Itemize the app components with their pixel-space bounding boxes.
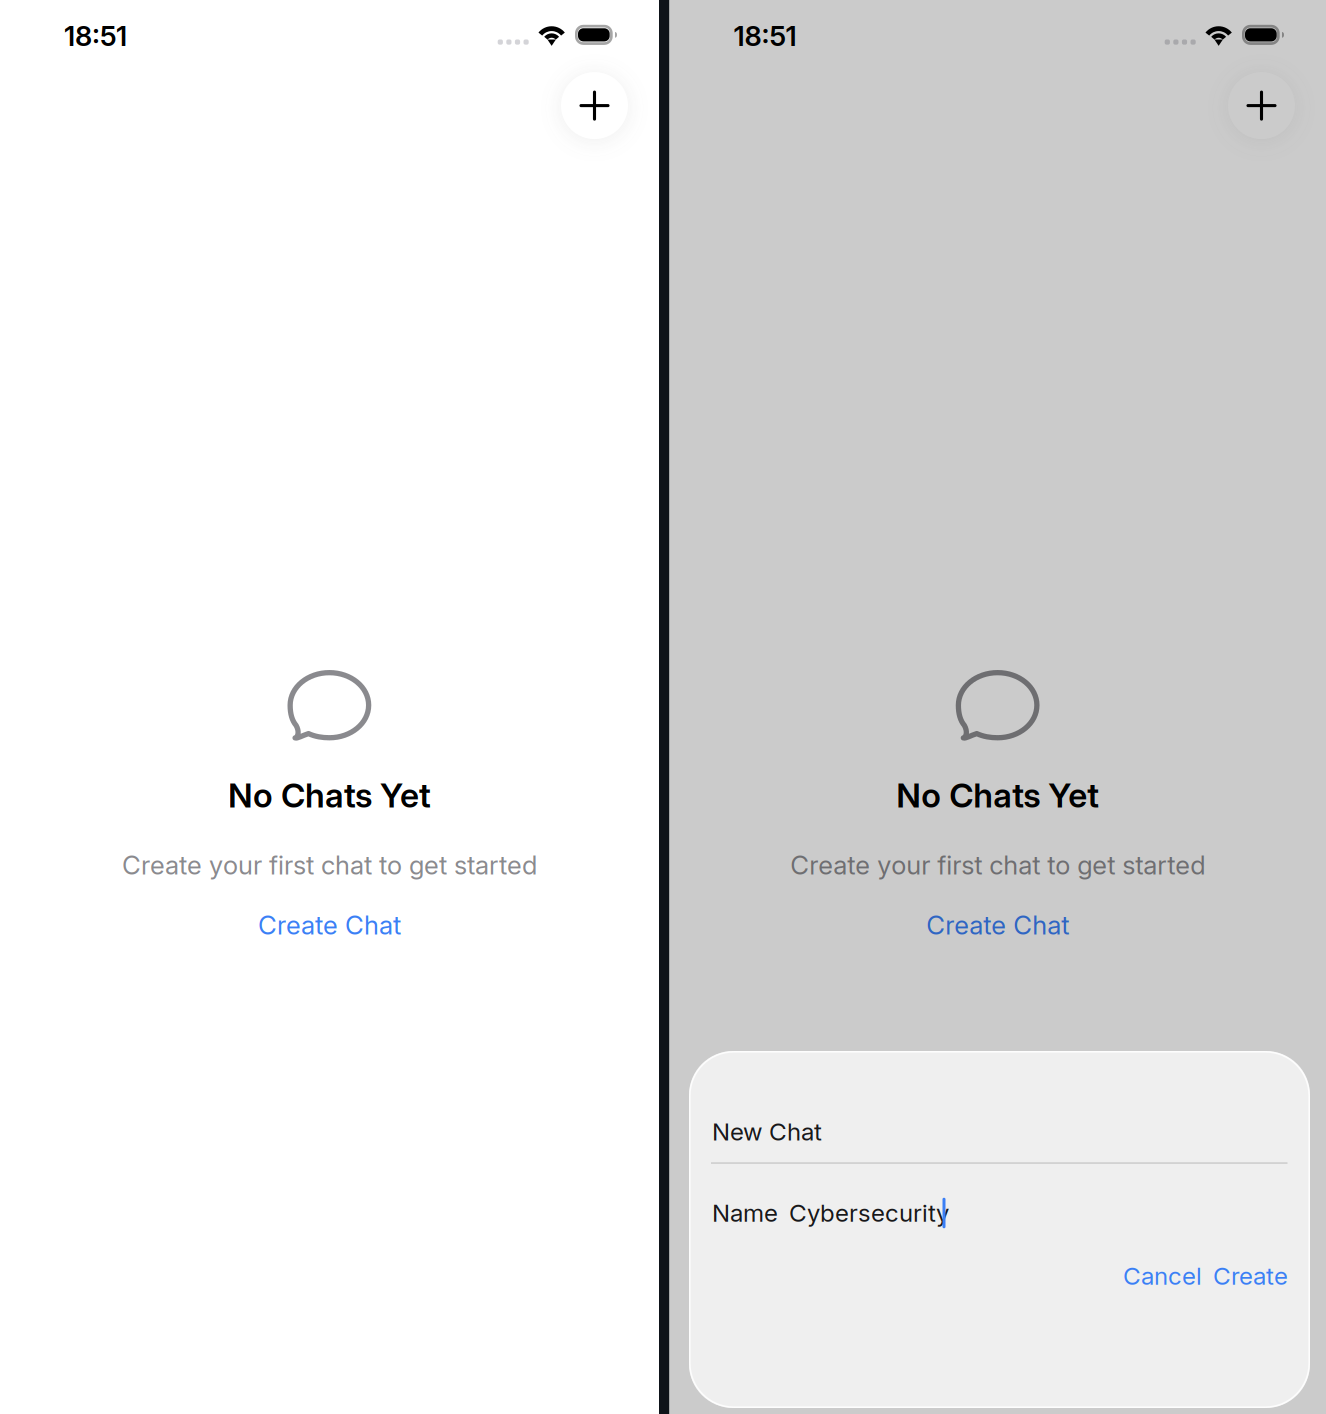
staticText: Create bbox=[1213, 1261, 1288, 1291]
staticText: New Chat bbox=[712, 1117, 822, 1146]
staticText: Create your first chat to get started bbox=[790, 849, 1205, 881]
staticText: Create your first chat to get started bbox=[122, 849, 537, 881]
staticText: Create Chat bbox=[926, 910, 1069, 941]
staticText: Name bbox=[712, 1198, 778, 1228]
staticText: 18:51 bbox=[733, 19, 796, 53]
button[interactable]: Create Chat bbox=[920, 907, 1075, 944]
button[interactable]: New chat bbox=[1228, 72, 1295, 139]
staticText: Create Chat bbox=[258, 910, 401, 941]
button[interactable]: New chat bbox=[561, 72, 628, 139]
staticText: 18:51 bbox=[64, 19, 127, 53]
button[interactable]: Create Chat bbox=[252, 907, 407, 944]
staticText: No Chats Yet bbox=[228, 775, 431, 815]
staticText: Cancel bbox=[1123, 1261, 1202, 1291]
button[interactable]: Create bbox=[1208, 1257, 1293, 1295]
staticText: Cybersecurity bbox=[789, 1198, 949, 1228]
staticText: No Chats Yet bbox=[896, 775, 1099, 815]
button[interactable]: Cancel bbox=[1118, 1257, 1207, 1295]
